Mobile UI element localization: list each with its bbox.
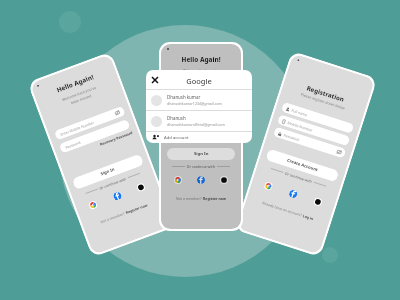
button[interactable]: Continue with Google [174, 176, 182, 184]
button[interactable]: Continue with Apple [313, 197, 323, 207]
button[interactable]: Dhanush kumar [146, 90, 252, 110]
staticText: Create Account [286, 158, 318, 173]
staticText: Sign In [100, 166, 116, 177]
staticText: Not a member? [176, 196, 203, 201]
staticText: Mobile Number [287, 120, 313, 133]
staticText: Or continue with [282, 170, 314, 185]
staticText: Or continue with [97, 175, 129, 191]
staticText: Not a member? [100, 210, 127, 224]
staticText: Google [146, 76, 252, 86]
staticText: Dhanush kumar [167, 94, 201, 100]
staticText: Welcome back you've been missed [161, 68, 241, 80]
staticText: Enter Mobile Number [172, 100, 208, 105]
button[interactable]: Enter Mobile Number [167, 97, 235, 107]
button[interactable]: Register now [125, 202, 148, 215]
button[interactable]: Password [167, 111, 235, 121]
button[interactable]: Enter Mobile Number [54, 106, 126, 140]
staticText: dhanushkumarofficial@gmail.com [167, 122, 225, 127]
staticText: Please register down below [281, 86, 365, 117]
staticText: Recovery Password [63, 130, 133, 160]
staticText: Password [172, 114, 188, 119]
button[interactable]: Add account [146, 132, 252, 143]
staticText: Welcome back you've been missed [38, 76, 122, 117]
staticText: Enter Mobile Number [60, 120, 95, 137]
staticText: Hello Again! [161, 55, 241, 64]
button[interactable]: Continue with Facebook [197, 176, 205, 184]
staticText: Sign In [194, 151, 209, 157]
button[interactable]: Log in [302, 213, 314, 221]
button[interactable]: Full name [281, 102, 354, 134]
button[interactable]: Continue with Facebook [288, 189, 298, 199]
staticText: dhanushkumar1234@gmail.com [167, 101, 222, 106]
staticText: Recovery Password [167, 123, 235, 128]
staticText: Add account [164, 135, 189, 141]
staticText: Password [64, 140, 81, 150]
staticText: Password [283, 132, 300, 142]
staticText: Already have an account? [261, 200, 304, 218]
button[interactable]: Password [59, 119, 131, 154]
button[interactable]: Create Account [265, 148, 339, 182]
button[interactable]: Continue with Apple [220, 176, 228, 184]
staticText: Full name [291, 108, 309, 118]
button[interactable]: Close [150, 75, 160, 85]
staticText: Hello Again! [34, 64, 116, 102]
button[interactable]: Mobile Number [277, 114, 350, 146]
button[interactable]: Sign In [72, 153, 144, 190]
staticText: Registration [283, 76, 368, 110]
button[interactable]: Dhanush [146, 111, 252, 131]
button[interactable]: Continue with Google [88, 200, 98, 210]
button[interactable]: Password [273, 126, 346, 159]
staticText: Dhanush [167, 115, 186, 121]
button[interactable]: Continue with Apple [136, 182, 146, 192]
button[interactable]: Continue with Facebook [112, 191, 123, 201]
staticText: Or continue with [185, 164, 217, 169]
button[interactable]: Sign In [167, 148, 235, 160]
button[interactable]: Continue with Google [263, 181, 273, 191]
button[interactable]: Register now [203, 196, 226, 201]
